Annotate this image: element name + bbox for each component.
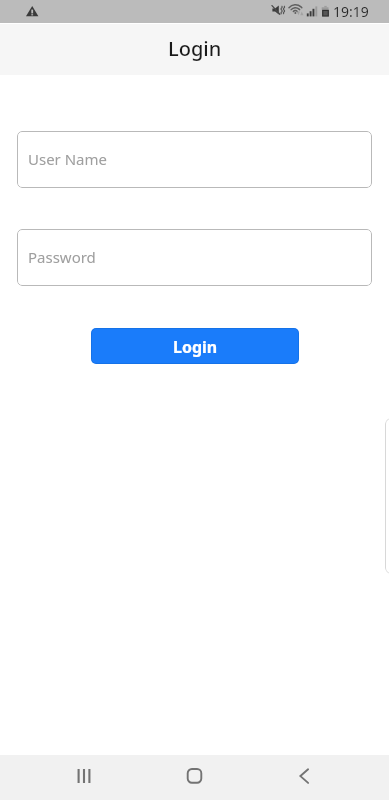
button[interactable]: Back xyxy=(279,753,327,798)
staticText: User Name xyxy=(28,149,108,169)
staticText: Login xyxy=(173,336,218,358)
button[interactable]: User Name xyxy=(17,131,372,188)
staticText: Password xyxy=(28,247,96,267)
button[interactable]: Password xyxy=(17,229,372,286)
button[interactable]: Home xyxy=(170,753,218,798)
staticText: 19:19 xyxy=(333,2,369,21)
staticText: Login xyxy=(168,35,222,62)
button[interactable]: Recent apps xyxy=(61,753,109,798)
button[interactable]: Login xyxy=(91,328,299,364)
